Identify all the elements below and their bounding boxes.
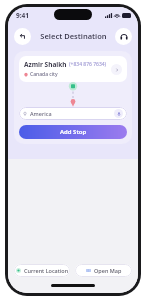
button[interactable]: Open Map: [75, 264, 132, 277]
staticText: (+834 876 7634): [69, 61, 107, 68]
button[interactable]: Support: [115, 28, 132, 45]
button[interactable]: Azmir Shaikh: [19, 56, 127, 82]
staticText: Azmir Shaikh: [24, 60, 67, 69]
staticText: America: [30, 110, 114, 117]
staticText: Open Map: [94, 267, 122, 274]
staticText: Canada city: [30, 71, 58, 78]
staticText: Current Location: [24, 267, 69, 274]
button[interactable]: Open contact: [111, 64, 122, 75]
button[interactable]: Current Location: [14, 264, 70, 277]
button[interactable]: Voice search: [114, 109, 123, 118]
button[interactable]: Back: [14, 28, 31, 45]
staticText: 9:41: [16, 11, 29, 20]
button[interactable]: Add Stop: [19, 125, 127, 139]
button[interactable]: America: [19, 107, 127, 120]
staticText: Add Stop: [60, 128, 87, 136]
staticText: Select Destination: [40, 31, 107, 41]
